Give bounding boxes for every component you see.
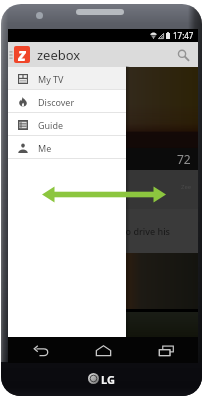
staticText: 17:47 [173, 30, 194, 41]
staticText: Who wants to drive his [72, 225, 170, 237]
button[interactable]: Home [72, 337, 135, 363]
staticText: My TV [38, 73, 64, 85]
staticText: Me [38, 142, 52, 154]
button[interactable]: Search [174, 46, 192, 64]
staticText: zeebox [37, 46, 81, 64]
staticText: Discover [38, 96, 75, 108]
button[interactable]: My TV [8, 67, 126, 90]
staticText: Guide [38, 119, 64, 131]
button[interactable]: Me [8, 136, 126, 159]
staticText: Z [18, 46, 26, 63]
button[interactable]: Back [8, 337, 72, 363]
button[interactable]: Recent apps [135, 337, 198, 363]
button[interactable]: Guide [8, 113, 126, 136]
staticText: Zee [181, 183, 192, 191]
staticText: 72 [177, 151, 191, 167]
button[interactable]: Discover [8, 90, 126, 113]
button[interactable]: Z [8, 42, 126, 67]
staticText: LG [101, 372, 115, 387]
